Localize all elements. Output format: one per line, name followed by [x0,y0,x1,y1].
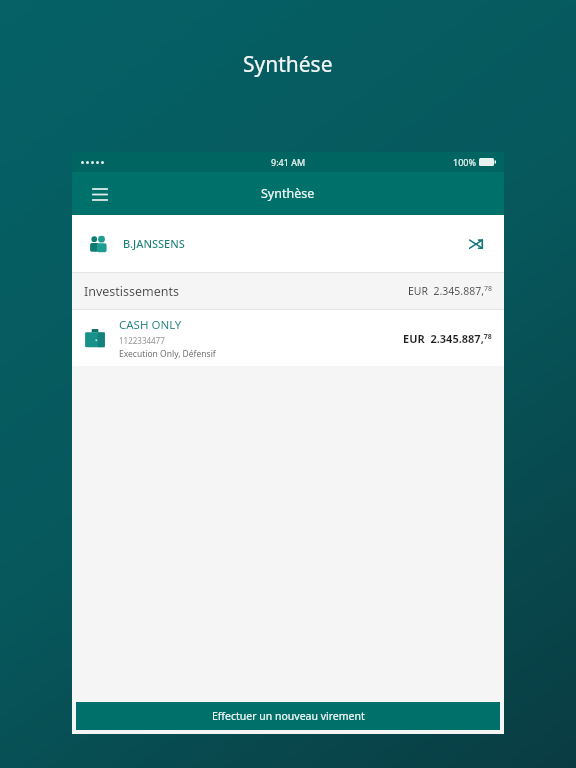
staticText: Synthése [243,50,333,79]
staticText: 1122334477 [119,335,165,346]
button[interactable]: Switch account [463,231,489,257]
staticText: B.JANSSENS [123,236,185,251]
button[interactable]: Effectuer un nouveau virement [76,702,500,730]
staticText: EUR 2.345.887,78 [403,331,492,346]
staticText: Investissements [84,283,180,300]
staticText: 100% [453,156,476,168]
staticText: Synthèse [261,185,315,202]
staticText: Effectuer un nouveau virement [212,709,365,723]
button[interactable]: CASH ONLY [72,310,504,366]
staticText: EUR 2.345.887,78 [408,284,492,298]
button[interactable]: B.JANSSENS [72,215,504,272]
staticText: CASH ONLY [119,317,182,333]
button[interactable]: Menu [87,181,113,207]
staticText: Execution Only, Défensif [119,348,216,360]
staticText: 9:41 AM [271,156,306,168]
